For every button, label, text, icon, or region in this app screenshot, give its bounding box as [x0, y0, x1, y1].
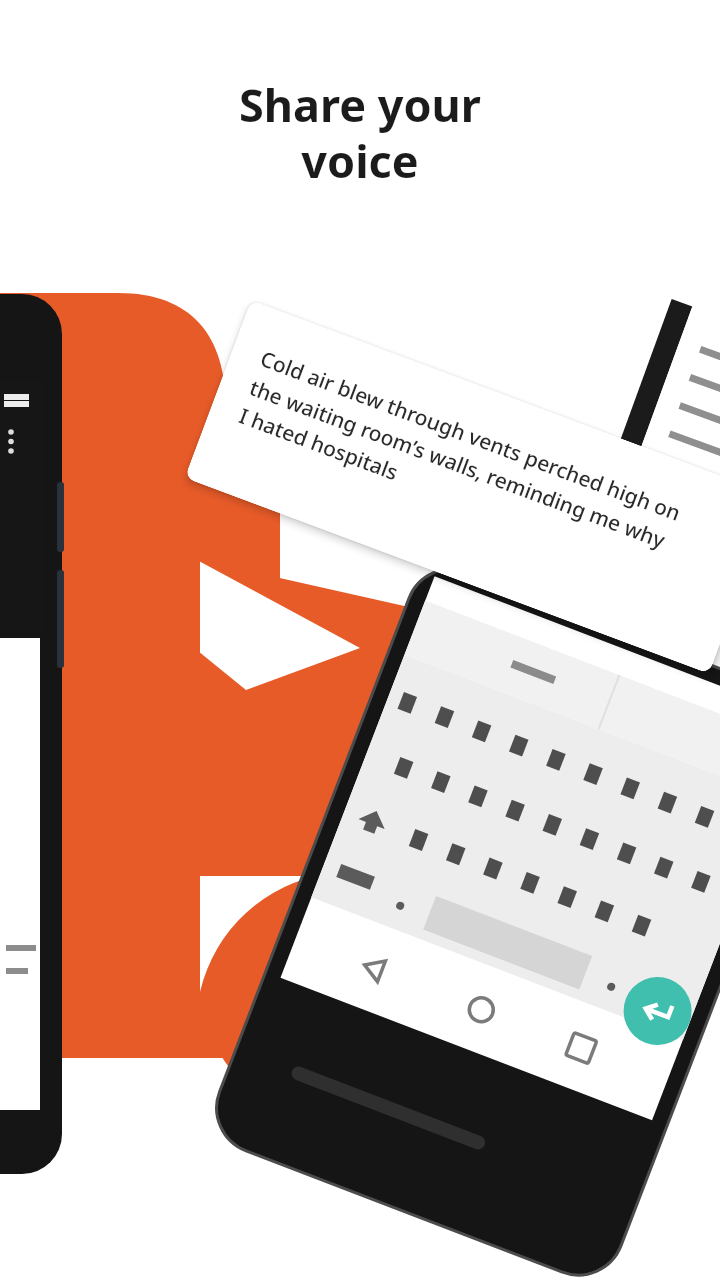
- button[interactable]: Share your voice: [0, 74, 720, 191]
- staticText: Share your voice: [0, 74, 720, 191]
- button[interactable]: Cold air blew through vents perched high…: [184, 300, 720, 674]
- button[interactable]: Phone with keyboard: [203, 555, 720, 1280]
- button[interactable]: Phone showing a story: [559, 299, 720, 691]
- staticText: Cold air blew through vents perched high…: [235, 344, 685, 584]
